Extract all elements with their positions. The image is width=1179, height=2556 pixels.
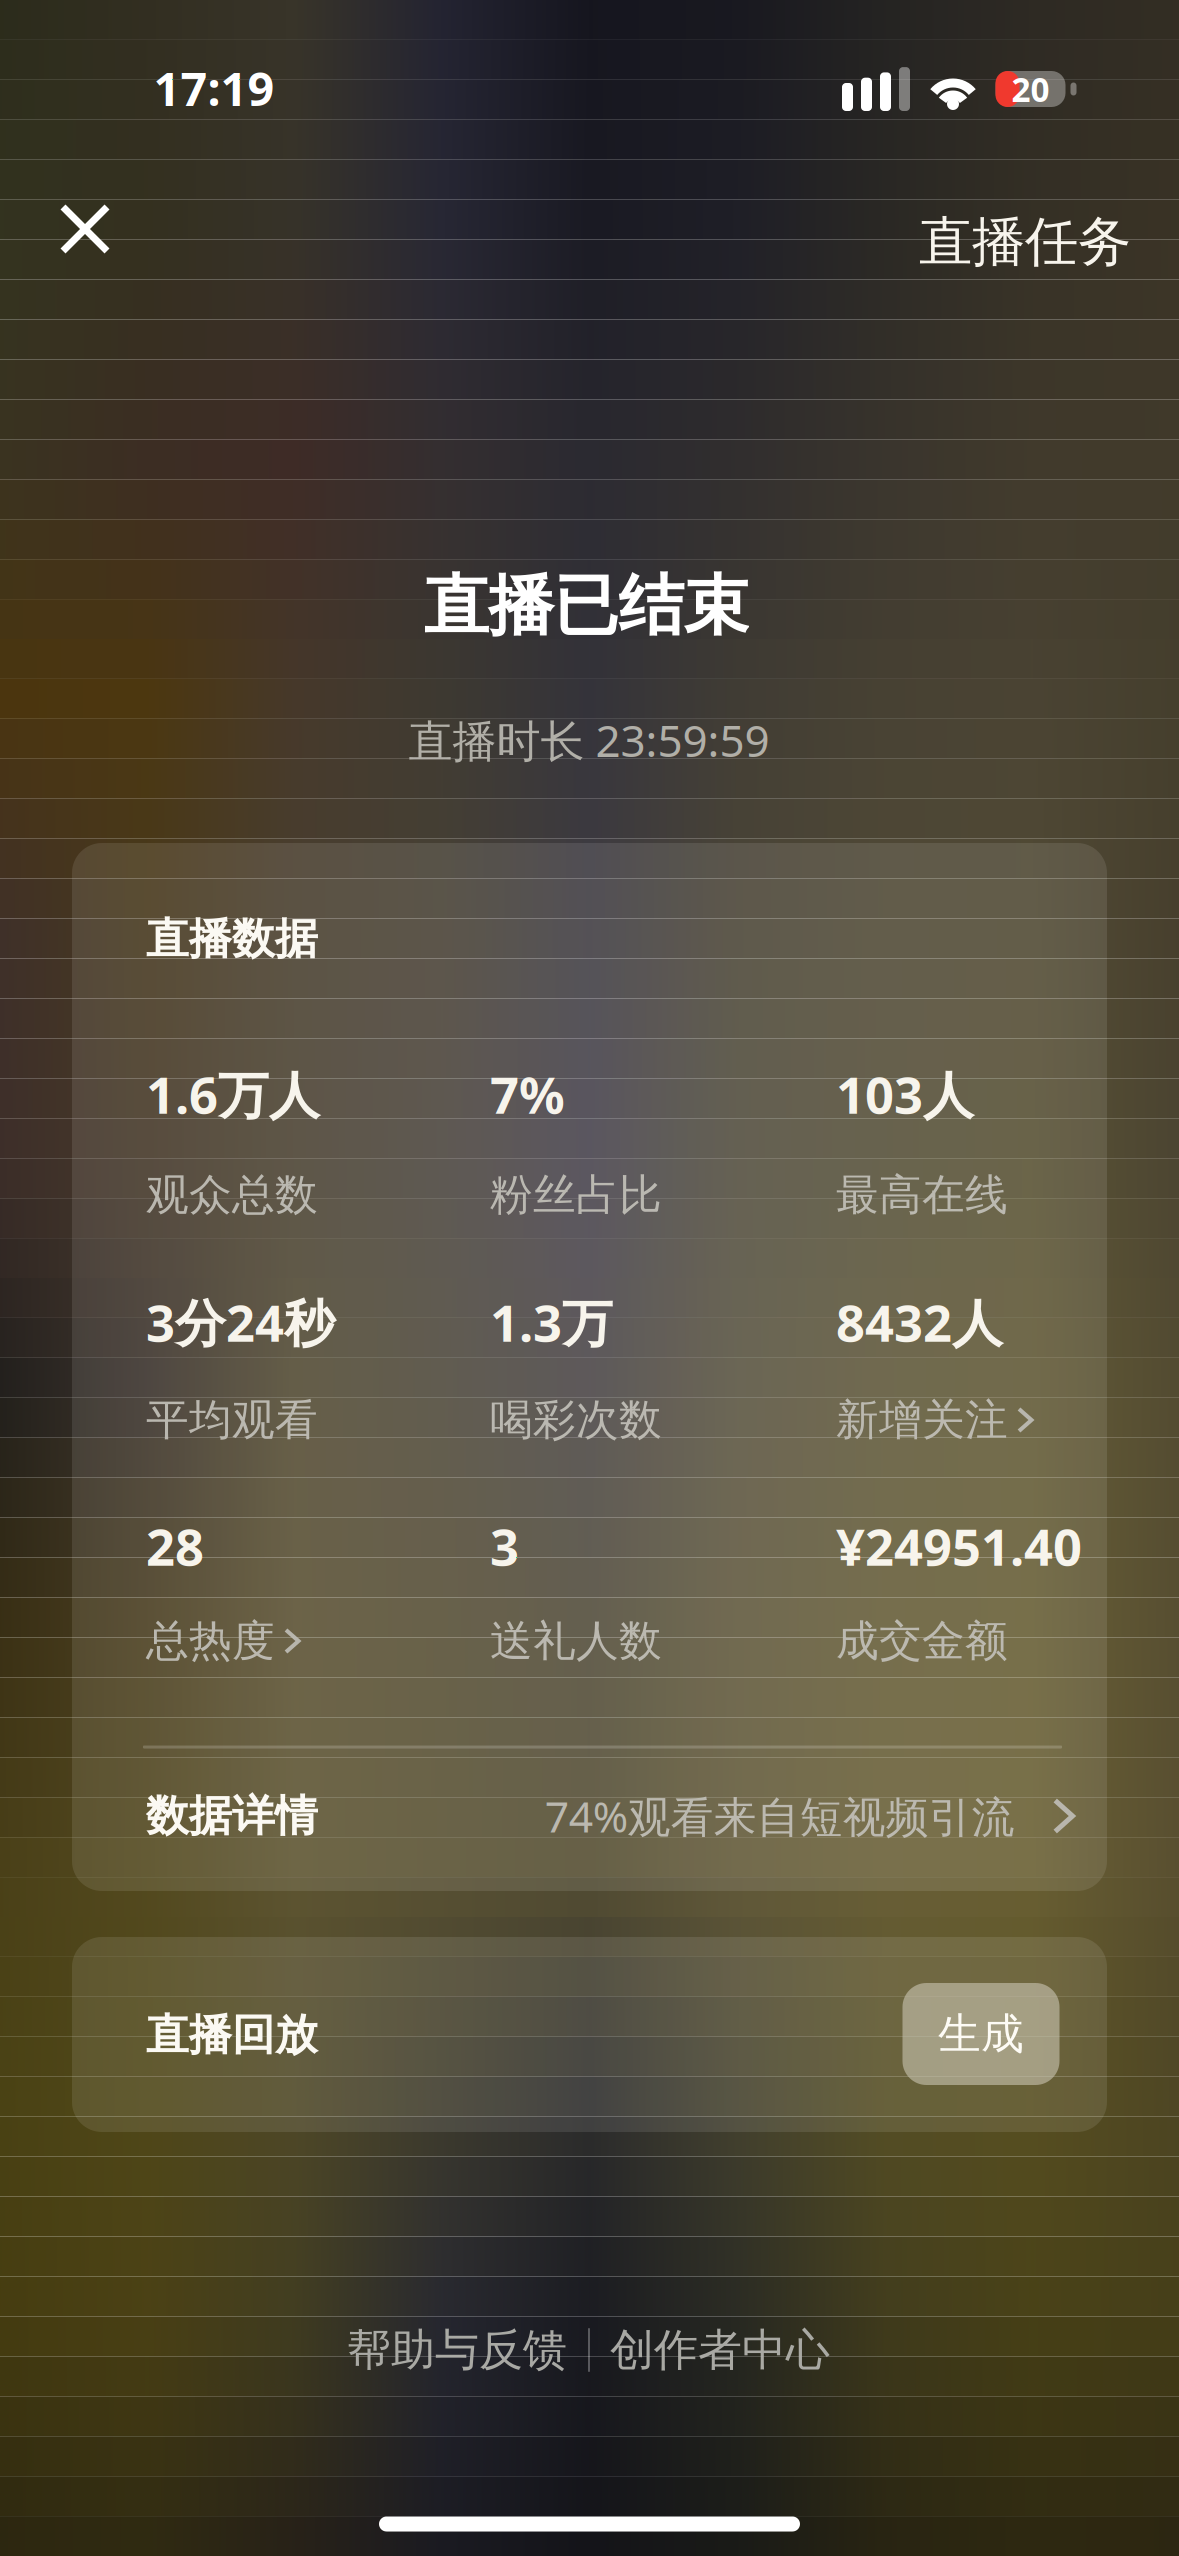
staticText: 28 [146, 1512, 204, 1580]
staticText: 1.3万 [490, 1288, 613, 1356]
staticText: 直播时长 23:59:59 [408, 711, 769, 769]
staticText: 1.6万人 [146, 1060, 320, 1128]
staticText: 直播任务 [919, 209, 1131, 275]
button[interactable]: 创作者中心 [594, 2307, 846, 2393]
staticText: ¥24951.40 [836, 1512, 1082, 1580]
staticText: 新增关注 [836, 1394, 1008, 1446]
staticText: 8432人 [836, 1288, 1003, 1356]
staticText: 粉丝占比 [490, 1169, 662, 1221]
staticText: 17:19 [153, 57, 274, 119]
staticText: 成交金额 [836, 1615, 1008, 1667]
staticText: 3分24秒 [146, 1288, 335, 1356]
staticText: 生成 [938, 2008, 1024, 2060]
staticText: 7% [490, 1060, 565, 1128]
staticText: 最高在线 [836, 1169, 1008, 1221]
staticText: 总热度 [146, 1615, 275, 1667]
staticText: 数据详情 [146, 1790, 318, 1842]
staticText: 直播数据 [146, 913, 318, 965]
button[interactable]: 生成 [902, 1983, 1059, 2085]
staticText: 3 [490, 1512, 519, 1580]
staticText: 送礼人数 [490, 1615, 662, 1667]
staticText: 直播已结束 [423, 566, 748, 646]
staticText: 103人 [836, 1060, 974, 1128]
staticText: 创作者中心 [610, 2323, 830, 2377]
staticText: 帮助与反馈 [347, 2323, 567, 2377]
staticText: 平均观看 [146, 1394, 318, 1446]
button[interactable]: 数据详情 [146, 1751, 1085, 1881]
staticText: 喝彩次数 [490, 1394, 662, 1446]
staticText: 74%观看来自短视频引流 [545, 1788, 1015, 1844]
staticText: 20 [1011, 67, 1049, 111]
staticText: 直播回放 [146, 2009, 318, 2061]
staticText: 观众总数 [146, 1169, 318, 1221]
button[interactable]: 直播任务 [893, 183, 1157, 301]
button[interactable]: 帮助与反馈 [331, 2307, 583, 2393]
button[interactable]: Close [20, 164, 150, 294]
